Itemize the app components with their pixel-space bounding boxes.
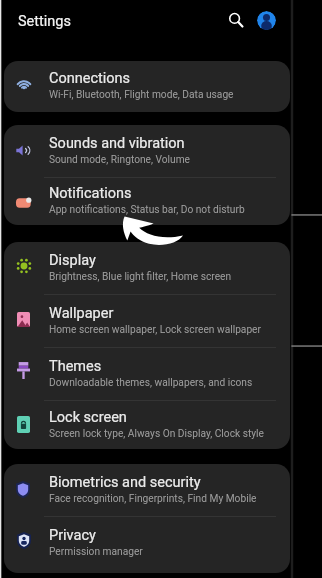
button[interactable]: Biometrics and security (4, 464, 290, 516)
button[interactable]: Privacy (4, 517, 290, 569)
button[interactable]: Search (223, 7, 249, 33)
staticText: Face recognition, Fingerprints, Find My … (49, 493, 257, 505)
button[interactable]: Themes (4, 348, 290, 400)
staticText: Sounds and vibration (49, 135, 185, 152)
button[interactable]: Wallpaper (4, 295, 290, 347)
staticText: Screen lock type, Always On Display, Clo… (49, 428, 264, 440)
staticText: Display (49, 252, 96, 269)
staticText: Permission manager (49, 546, 143, 558)
button[interactable]: Connections (4, 61, 290, 112)
staticText: Sound mode, Ringtone, Volume (49, 154, 190, 166)
staticText: Privacy (49, 527, 96, 544)
button[interactable]: Account (257, 11, 276, 30)
staticText: Biometrics and security (49, 474, 201, 491)
staticText: Notifications (49, 185, 132, 202)
staticText: Lock screen (49, 409, 127, 426)
staticText: Wallpaper (49, 305, 114, 322)
staticText: Wi-Fi, Bluetooth, Flight mode, Data usag… (49, 89, 234, 101)
button[interactable]: Notifications (4, 178, 290, 225)
staticText: Connections (49, 70, 131, 87)
button[interactable]: Sounds and vibration (4, 125, 290, 177)
staticText: Downloadable themes, wallpapers, and ico… (49, 377, 253, 389)
staticText: App notifications, Status bar, Do not di… (49, 204, 245, 216)
staticText: Brightness, Blue light filter, Home scre… (49, 271, 232, 283)
button[interactable]: Lock screen (4, 401, 290, 449)
staticText: Settings (18, 13, 71, 30)
staticText: Themes (49, 358, 102, 375)
button[interactable]: Display (4, 242, 290, 294)
staticText: Home screen wallpaper, Lock screen wallp… (49, 324, 261, 336)
